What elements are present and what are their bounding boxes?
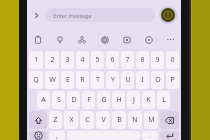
staticText: H: [116, 95, 122, 105]
staticText: 3: [65, 55, 70, 65]
staticText: K: [146, 95, 151, 105]
staticText: R: [80, 75, 85, 85]
staticText: X: [69, 115, 74, 125]
staticText: Z: [53, 115, 58, 125]
staticText: V: [101, 115, 106, 125]
button[interactable]: P: [166, 71, 179, 89]
button[interactable]: Shift: [29, 111, 47, 129]
staticText: Enter message: [53, 12, 92, 19]
button[interactable]: Enter message: [45, 8, 155, 22]
staticText: 1: [34, 55, 39, 65]
staticText: P: [170, 75, 175, 85]
staticText: 7: [125, 55, 130, 65]
button[interactable]: O: [151, 71, 164, 89]
staticText: D: [71, 95, 77, 105]
button[interactable]: 1: [29, 51, 43, 69]
button[interactable]: E: [61, 71, 74, 89]
button[interactable]: Symbols: [29, 131, 47, 140]
staticText: B: [117, 115, 122, 125]
button[interactable]: A: [37, 91, 50, 109]
button[interactable]: R: [76, 71, 89, 89]
button[interactable]: K: [142, 91, 155, 109]
staticText: 8: [140, 55, 145, 65]
staticText: 0: [170, 55, 175, 65]
button[interactable]: D: [67, 91, 80, 109]
button[interactable]: V: [96, 111, 110, 129]
button[interactable]: Translate: [120, 33, 133, 46]
button[interactable]: 6: [106, 51, 119, 69]
button[interactable]: Clipboard: [31, 33, 44, 46]
button[interactable]: U: [121, 71, 134, 89]
staticText: Q: [33, 75, 39, 85]
staticText: G: [101, 95, 107, 105]
button[interactable]: L: [157, 91, 170, 109]
button[interactable]: S: [52, 91, 65, 109]
button[interactable]: Settings: [142, 33, 155, 46]
button[interactable]: M: [144, 111, 158, 129]
button[interactable]: ,: [49, 131, 65, 140]
staticText: Y: [111, 75, 115, 85]
staticText: 5: [95, 55, 100, 65]
button[interactable]: W: [45, 71, 59, 89]
button[interactable]: Backspace: [160, 111, 179, 129]
staticText: T: [96, 75, 100, 85]
staticText: W: [49, 75, 56, 85]
staticText: 2: [50, 55, 55, 65]
button[interactable]: 5: [91, 51, 104, 69]
button[interactable]: Enter: [160, 131, 179, 140]
staticText: ,: [56, 131, 58, 140]
button[interactable]: Profile: [159, 6, 177, 24]
staticText: M: [148, 115, 155, 125]
button[interactable]: 9: [151, 51, 164, 69]
staticText: J: [133, 95, 135, 105]
button[interactable]: Sticker: [75, 33, 88, 46]
button[interactable]: Emoji: [98, 33, 111, 46]
button[interactable]: I: [136, 71, 149, 89]
button[interactable]: 4: [76, 51, 89, 69]
button[interactable]: X: [64, 111, 78, 129]
button[interactable]: H: [112, 91, 125, 109]
button[interactable]: More: [164, 33, 177, 46]
button[interactable]: 7: [121, 51, 134, 69]
button[interactable]: C: [80, 111, 94, 129]
staticText: 9: [155, 55, 160, 65]
button[interactable]: F: [82, 91, 95, 109]
staticText: .: [149, 131, 151, 140]
button[interactable]: 0: [166, 51, 179, 69]
staticText: N: [132, 115, 138, 125]
button[interactable]: T: [91, 71, 104, 89]
button[interactable]: 3: [61, 51, 74, 69]
button[interactable]: Z: [49, 111, 62, 129]
staticText: L: [162, 95, 166, 105]
staticText: C: [85, 115, 90, 125]
button[interactable]: J: [127, 91, 140, 109]
button[interactable]: Theme: [53, 33, 66, 46]
staticText: S: [57, 95, 61, 105]
button[interactable]: Expand: [30, 9, 43, 22]
staticText: O: [155, 75, 161, 85]
button[interactable]: B: [112, 111, 126, 129]
staticText: 4: [80, 55, 85, 65]
staticText: I: [141, 75, 144, 85]
staticText: U: [125, 75, 131, 85]
staticText: 6: [110, 55, 115, 65]
button[interactable]: Q: [29, 71, 43, 89]
staticText: A: [41, 95, 46, 105]
staticText: F: [87, 95, 91, 105]
button[interactable]: N: [128, 111, 142, 129]
button[interactable]: 8: [136, 51, 149, 69]
staticText: E: [66, 75, 70, 85]
button[interactable]: .: [142, 131, 158, 140]
button[interactable]: Y: [106, 71, 119, 89]
button[interactable]: G: [97, 91, 110, 109]
button[interactable]: 2: [45, 51, 59, 69]
